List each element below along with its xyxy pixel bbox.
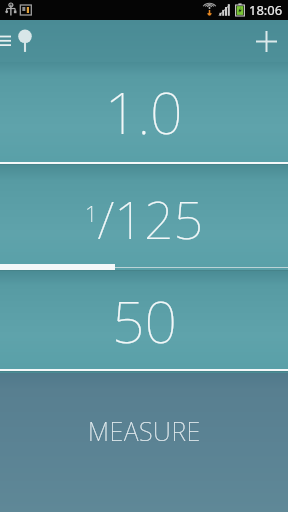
button[interactable]: MEASURE (0, 373, 288, 512)
staticText: 50 (112, 282, 177, 360)
button[interactable]: 50 (0, 272, 288, 369)
button[interactable]: Light meter mode (11, 20, 39, 62)
staticText: 18:06 (249, 1, 283, 19)
button[interactable]: 1/125 (0, 166, 288, 270)
staticText: 1/125 (85, 183, 204, 254)
button[interactable]: Add (244, 20, 288, 62)
staticText: MEASURE (88, 414, 201, 448)
button[interactable]: 1.0 (0, 62, 288, 162)
staticText: 1.0 (105, 73, 183, 151)
button[interactable]: Open navigation menu (0, 20, 22, 62)
